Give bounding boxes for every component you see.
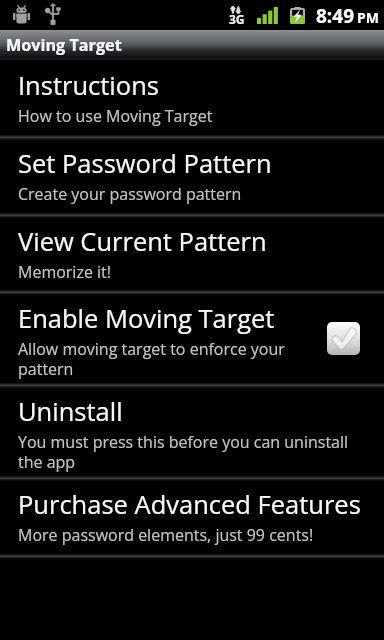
staticText: Uninstall [18, 401, 123, 427]
button[interactable]: Instructions [0, 60, 384, 137]
button[interactable]: Set Password Pattern [0, 138, 384, 215]
staticText: PM [357, 8, 379, 27]
staticText: 8:49 [316, 3, 355, 29]
button[interactable]: Uninstall [0, 386, 384, 478]
button[interactable]: Enable Moving Target [327, 322, 360, 355]
staticText: Instructions [18, 75, 159, 101]
staticText: 3G [229, 11, 245, 27]
staticText: More password elements, just 99 cents! [18, 525, 314, 545]
staticText: View Current Pattern [18, 231, 267, 257]
staticText: You must press this before you can unins… [18, 432, 364, 472]
staticText: Set Password Pattern [18, 153, 272, 179]
button[interactable]: View Current Pattern [0, 216, 384, 292]
staticText: Allow moving target to enforce your patt… [18, 339, 307, 379]
staticText: Moving Target [6, 34, 122, 56]
button[interactable]: Enable Moving Target [0, 293, 384, 385]
staticText: How to use Moving Target [18, 106, 213, 126]
staticText: Enable Moving Target [18, 308, 275, 334]
staticText: Create your password pattern [18, 184, 242, 204]
button[interactable]: Purchase Advanced Features [0, 479, 384, 556]
staticText: Memorize it! [18, 262, 111, 282]
staticText: Purchase Advanced Features [18, 494, 361, 520]
